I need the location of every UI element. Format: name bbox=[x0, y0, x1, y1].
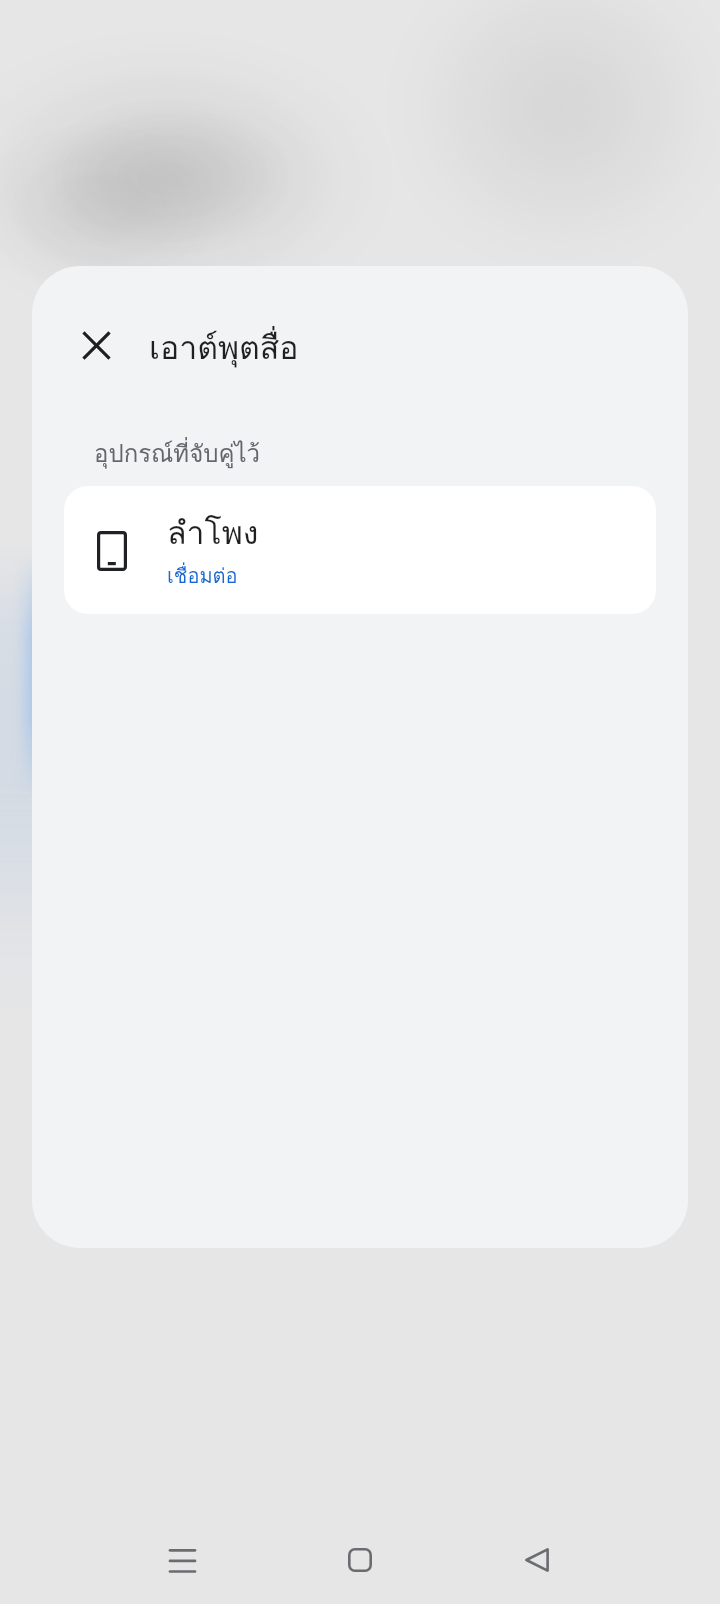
button[interactable]: Back bbox=[489, 1520, 585, 1600]
staticText: เอาต์พุตสื่อ bbox=[149, 322, 299, 373]
button[interactable]: Recent apps bbox=[134, 1520, 230, 1600]
staticText: ลำโพง bbox=[167, 507, 259, 558]
button[interactable]: Close bbox=[64, 313, 128, 377]
button[interactable]: Home bbox=[312, 1520, 408, 1600]
staticText: อุปกรณ์ที่จับคู่ไว้ bbox=[94, 434, 261, 472]
button[interactable]: ลำโพง bbox=[64, 486, 656, 614]
staticText: เชื่อมต่อ bbox=[167, 560, 238, 592]
